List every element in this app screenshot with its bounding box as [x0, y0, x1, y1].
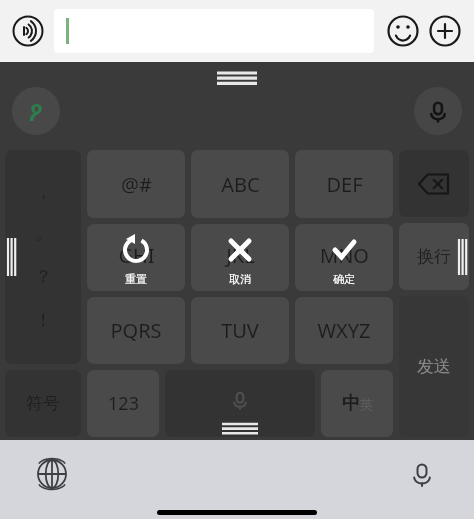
- staticText: WXYZ: [317, 317, 371, 344]
- staticText: PQRS: [110, 317, 162, 344]
- staticText: DEF: [326, 171, 363, 198]
- button[interactable]: 换行: [399, 223, 469, 290]
- button[interactable]: Add: [426, 12, 464, 50]
- button[interactable]: Voice: [414, 87, 462, 135]
- button[interactable]: 123: [87, 370, 159, 437]
- button[interactable]: WXYZ: [295, 297, 393, 364]
- button[interactable]: Space voice: [165, 370, 315, 437]
- staticText: ABC: [221, 171, 260, 198]
- staticText: 发送: [417, 356, 451, 377]
- staticText: 英: [360, 396, 373, 412]
- staticText: 123: [108, 391, 139, 416]
- button[interactable]: 发送: [399, 296, 469, 437]
- staticText: ！: [35, 310, 52, 331]
- button[interactable]: Emoji: [384, 12, 422, 50]
- staticText: 确定: [333, 272, 355, 286]
- button[interactable]: PQRS: [87, 297, 185, 364]
- staticText: MNO: [320, 242, 369, 269]
- button[interactable]: 确定: [295, 224, 393, 291]
- staticText: JKL: [226, 242, 255, 269]
- button[interactable]: Pleco: [12, 87, 60, 135]
- button[interactable]: Backspace: [399, 150, 469, 217]
- button[interactable]: DEF: [295, 150, 393, 218]
- staticText: GHI: [118, 242, 155, 269]
- staticText: 符号: [26, 393, 60, 414]
- button[interactable]: ，: [5, 150, 81, 364]
- button[interactable]: 取消: [191, 224, 289, 291]
- button[interactable]: Switch language: [30, 452, 74, 496]
- staticText: @#: [121, 171, 152, 198]
- button[interactable]: 重置: [87, 224, 185, 291]
- button[interactable]: Voice input: [10, 13, 46, 49]
- button[interactable]: [54, 9, 374, 53]
- staticText: 换行: [417, 246, 451, 267]
- staticText: ？: [35, 266, 52, 287]
- staticText: ዖ: [29, 95, 43, 128]
- staticText: 取消: [229, 272, 251, 286]
- staticText: 重置: [125, 272, 147, 286]
- button[interactable]: Microphone: [400, 452, 444, 496]
- button[interactable]: Chinese English toggle: [321, 370, 393, 437]
- staticText: 中: [342, 392, 360, 415]
- staticText: TUV: [221, 317, 259, 344]
- button[interactable]: ABC: [191, 150, 289, 218]
- button[interactable]: @#: [87, 150, 185, 218]
- button[interactable]: TUV: [191, 297, 289, 364]
